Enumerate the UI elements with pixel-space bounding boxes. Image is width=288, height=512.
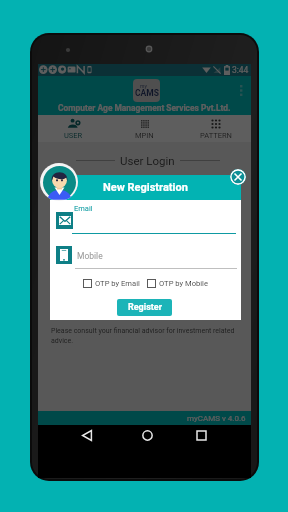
button[interactable]: OTP by Mobile [147, 279, 208, 288]
button[interactable]: MPIN [109, 115, 180, 142]
button[interactable]: Register [117, 299, 172, 316]
button[interactable]: Recents [191, 425, 212, 446]
staticText: Computer Age Management Services Pvt.Ltd… [58, 103, 231, 113]
button[interactable]: Close [230, 169, 246, 185]
button[interactable]: More options [234, 83, 248, 97]
button[interactable]: USER [38, 115, 109, 142]
staticText: MPIN [135, 131, 154, 140]
staticText: Password [51, 225, 85, 234]
button[interactable]: Home [137, 425, 158, 446]
staticText: Please consult your financial advisor fo… [51, 327, 235, 344]
staticText: User Login [120, 154, 175, 167]
staticText: Registered Email Id / PAN / Mobile No. [51, 202, 180, 211]
staticText: Please read the Terms & Conditions befor… [51, 262, 226, 280]
staticText: Register [128, 302, 162, 313]
staticText: myCAMS v 4.0.6 [187, 414, 246, 423]
staticText: Forgot Password? [51, 247, 112, 256]
staticText: USER [64, 131, 83, 140]
button[interactable]: OTP by Email [83, 279, 140, 288]
button[interactable]: myCAMS logo [133, 79, 160, 102]
button[interactable]: Back [76, 425, 97, 446]
staticText: OTP by Email [95, 279, 140, 288]
staticText: OTP by Mobile [159, 279, 208, 288]
staticText: CAMS [135, 88, 159, 98]
staticText: New Registration [103, 181, 188, 194]
button[interactable]: PATTERN [180, 115, 251, 142]
staticText: my [140, 83, 147, 89]
staticText: PATTERN [200, 131, 232, 140]
staticText: 3:44 [232, 65, 249, 75]
staticText: Email [74, 204, 93, 213]
staticText: Mobile [77, 251, 103, 261]
